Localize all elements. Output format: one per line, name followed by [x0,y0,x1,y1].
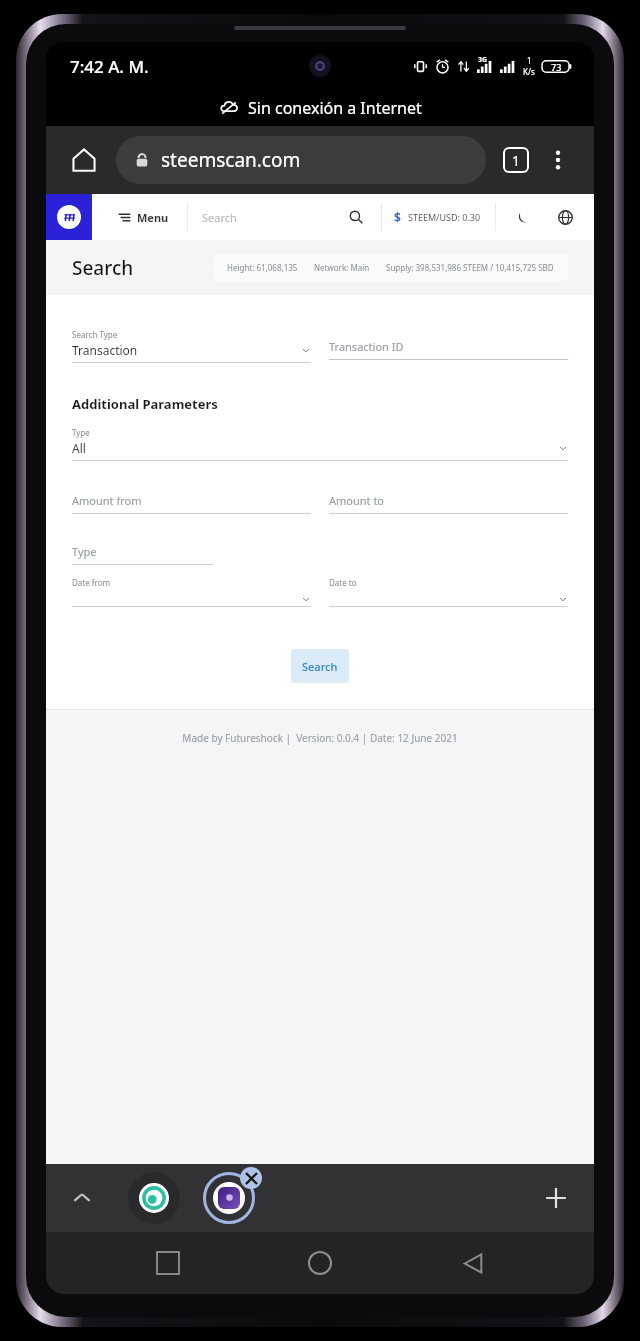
button[interactable]: Search [291,649,349,683]
staticText: Network: Main [314,262,370,273]
staticText: Search [202,210,237,225]
staticText: Search [72,255,134,281]
staticText: Date to [329,577,357,588]
staticText: K/s [523,66,535,77]
button[interactable]: Recents [137,1232,199,1294]
staticText: Date from [72,577,111,588]
staticText: 1 [512,151,521,170]
staticText: 73 [551,61,562,73]
button[interactable]: Menu [114,202,173,233]
button[interactable]: Search [341,202,371,232]
staticText: Made by Futureshock | Version: 0.0.4 | D… [182,731,458,745]
staticText: Search Type [72,329,118,340]
staticText: Transaction [72,342,138,358]
staticText: 1 [527,55,532,66]
button[interactable]: Expand [46,1164,118,1232]
button[interactable]: Close tab [240,1167,262,1189]
button[interactable]: Home [289,1232,351,1294]
button[interactable]: Search Type [72,329,311,363]
staticText: Additional Parameters [72,395,218,413]
button[interactable]: $ [394,201,481,233]
button[interactable]: Tabs, 1 open [494,138,538,182]
button[interactable]: Type [72,534,213,565]
staticText: Type [72,544,97,559]
staticText: All [72,440,86,456]
staticText: Supply: 398,531,986 STEEM / 10,415,725 S… [386,262,554,273]
button[interactable]: Amount to [329,483,568,514]
button[interactable]: Steemscan home [46,194,92,240]
button[interactable]: steemscan.com [116,136,486,184]
staticText: $ [394,209,401,225]
staticText: Menu [137,210,169,225]
staticText: Height: 61,068,135 [227,262,298,273]
staticText: STEEM/USD: 0.30 [408,211,481,223]
button[interactable]: Amount from [72,483,311,514]
staticText: Search [302,659,338,674]
staticText: Sin conexión a Internet [248,97,422,119]
staticText: Transaction ID [329,339,404,354]
staticText: 7:42 A. M. [70,55,149,78]
button[interactable]: App one [128,1172,180,1224]
button[interactable]: New tab [518,1164,594,1232]
button[interactable]: Date to [329,577,568,607]
button[interactable]: Dark mode [508,202,538,232]
staticText: Amount from [72,493,142,508]
staticText: 3G [478,55,488,65]
button[interactable]: Current tab [200,1169,258,1227]
button[interactable]: Language [550,202,580,232]
button[interactable]: Date from [72,577,311,607]
button[interactable]: Type [72,427,568,461]
button[interactable]: Back [442,1232,504,1294]
button[interactable]: More options [538,140,578,180]
staticText: Type [72,427,90,438]
button[interactable]: Transaction ID [329,329,568,360]
staticText: Amount to [329,493,385,508]
button[interactable]: Home [62,138,106,182]
staticText: steemscan.com [161,147,301,173]
